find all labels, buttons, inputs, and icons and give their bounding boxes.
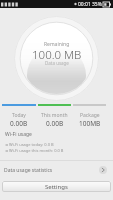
staticText: Data usage statistics [4, 167, 53, 174]
staticText: 35% [92, 1, 102, 8]
staticText: Wi-Fi usage [5, 131, 32, 138]
other: Open data usage statistics [99, 166, 107, 174]
staticText: Wi-Fi usage today: 0.0 B [9, 142, 54, 147]
staticText: 100.0 MB [32, 47, 82, 63]
staticText: 00:01 [78, 1, 91, 8]
staticText: 100MB [79, 119, 101, 128]
button[interactable]: Package [73, 104, 106, 128]
staticText: Today [12, 112, 26, 119]
staticText: This month [41, 112, 68, 119]
button[interactable]: Today [2, 104, 36, 128]
button[interactable]: Data usage statistics [0, 160, 113, 180]
button[interactable]: Settings [2, 181, 111, 192]
staticText: Settings [45, 183, 68, 191]
staticText: 0.00B [10, 119, 28, 128]
staticText: 0.00B [46, 119, 64, 128]
staticText: Package [80, 112, 100, 119]
staticText: Data usage [45, 60, 69, 66]
staticText: Remaining [44, 41, 70, 48]
staticText: Wi-Fi usage this month: 0.0 B [9, 148, 64, 153]
button[interactable]: This month [38, 104, 71, 128]
